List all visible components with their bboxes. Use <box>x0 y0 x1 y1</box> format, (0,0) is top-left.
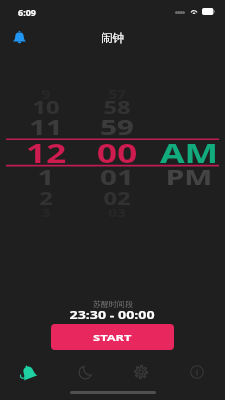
button[interactable]: Sleep <box>57 358 113 386</box>
staticText: 23:30 - 00:00 <box>70 307 155 322</box>
staticText: 1 <box>0 162 114 191</box>
button[interactable]: START <box>51 324 174 350</box>
button[interactable]: Alarms <box>0 358 57 386</box>
button[interactable]: Info <box>169 358 225 386</box>
staticText: AM <box>120 135 225 170</box>
staticText: 苏醒时间段 <box>93 299 133 309</box>
staticText: 10 <box>0 96 114 120</box>
button[interactable]: Settings <box>113 358 169 386</box>
staticText: 02 <box>48 187 185 211</box>
staticText: 6:09 <box>18 6 36 18</box>
staticText: 12 <box>0 135 114 170</box>
staticText: START <box>93 331 132 344</box>
button[interactable]: Alarm <box>6 24 32 52</box>
staticText: 59 <box>48 112 185 141</box>
staticText: 01 <box>48 162 185 191</box>
staticText: 00 <box>48 135 185 170</box>
staticText: PM <box>120 162 225 191</box>
staticText: 2 <box>0 187 114 211</box>
staticText: 闹钟 <box>101 31 124 45</box>
staticText: 58 <box>48 96 185 120</box>
staticText: 11 <box>0 112 114 141</box>
